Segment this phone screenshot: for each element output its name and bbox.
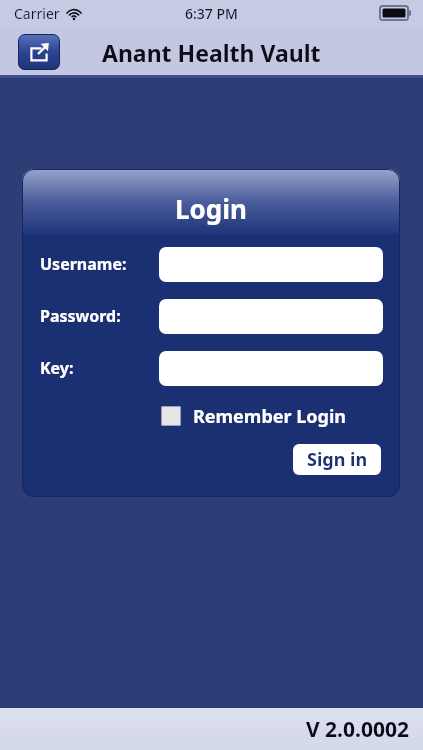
staticText: Key: — [40, 357, 74, 379]
staticText: Anant Health Vault — [102, 37, 321, 68]
staticText: 6:37 PM — [185, 4, 238, 23]
staticText: Username: — [40, 253, 127, 275]
button[interactable]: Sign in — [293, 444, 381, 475]
button[interactable]: Remember Login — [161, 402, 400, 430]
button[interactable] — [159, 299, 383, 334]
staticText: Password: — [40, 305, 121, 327]
button[interactable] — [159, 351, 383, 386]
button[interactable] — [159, 247, 383, 282]
staticText: Sign in — [307, 447, 368, 472]
staticText: Login — [175, 191, 247, 226]
button[interactable]: Share — [18, 34, 60, 70]
staticText: V 2.0.0002 — [306, 715, 409, 744]
staticText: Carrier — [14, 4, 60, 23]
staticText: Remember Login — [193, 404, 347, 429]
